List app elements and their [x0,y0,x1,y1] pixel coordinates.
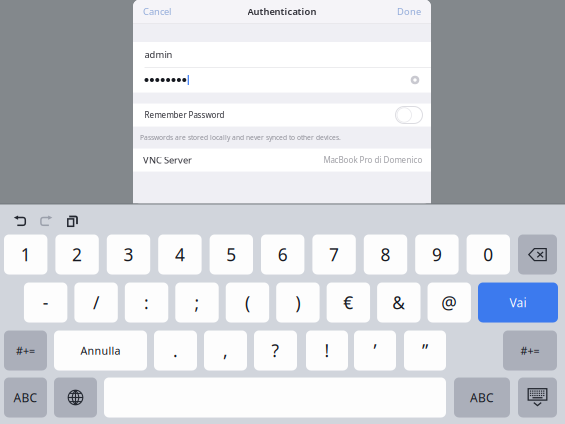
button[interactable]: ABC [4,377,47,417]
button[interactable]: 2 [55,234,99,274]
button[interactable]: Vai [478,282,558,322]
staticText: ) [295,291,300,314]
staticText: ? [271,339,279,362]
staticText: 5 [226,243,236,266]
staticText: 6 [278,243,288,266]
staticText: 0 [483,243,493,266]
staticText: @ [441,291,457,314]
button[interactable]: , [204,330,247,370]
staticText: ” [422,339,428,362]
button[interactable]: @ [428,282,471,322]
staticText: 3 [123,243,133,266]
button[interactable]: : [125,282,168,322]
button[interactable]: 9 [415,234,459,274]
button[interactable]: Delete [518,234,557,274]
button[interactable]: 0 [467,234,510,274]
staticText: ; [194,291,199,314]
staticText: & [392,291,405,314]
staticText: VNC Server [143,154,192,166]
staticText: Authentication [247,5,316,18]
button[interactable]: #+= [503,330,557,370]
button[interactable]: 1 [4,234,47,274]
staticText: 2 [72,243,82,266]
button[interactable]: ! [306,330,348,370]
button[interactable]: Next keyboard [54,377,97,417]
button[interactable]: Redo [33,208,59,234]
button[interactable]: 7 [312,234,356,274]
staticText: 7 [329,243,339,266]
staticText: , [223,339,228,362]
button[interactable]: ) [276,282,320,322]
button[interactable]: 6 [261,234,304,274]
button[interactable]: VNC Server [133,148,431,171]
staticText: € [343,291,353,314]
button[interactable]: ” [404,330,446,370]
button[interactable]: Annulla [54,330,147,370]
staticText: ABC [470,389,494,405]
staticText: Vai [509,294,526,310]
button[interactable]: 3 [107,234,150,274]
button[interactable]: - [24,282,67,322]
staticText: admin [144,48,172,61]
staticText: Passwords are stored locally and never s… [140,133,341,142]
staticText: #+= [16,343,35,358]
staticText: ( [245,291,250,314]
staticText: 8 [380,243,390,266]
staticText: MacBook Pro di Domenico [323,155,422,165]
button[interactable]: € [327,282,370,322]
button[interactable]: 4 [158,234,202,274]
button[interactable]: Remember Password [395,106,422,123]
button[interactable]: Done [387,0,431,23]
button[interactable]: #+= [4,330,47,370]
button[interactable]: 8 [364,234,407,274]
staticText: Cancel [143,5,171,18]
staticText: . [173,339,178,362]
button[interactable]: Clear text [407,72,423,88]
staticText: ’ [373,339,376,362]
button[interactable]: ? [254,330,297,370]
staticText: 1 [21,243,31,266]
button[interactable]: ’ [354,330,396,370]
button[interactable]: & [377,282,420,322]
button[interactable]: Cancel [133,0,181,23]
staticText: - [43,291,49,314]
button[interactable]: ; [175,282,219,322]
staticText: ! [324,339,329,362]
button[interactable]: Paste [59,208,85,234]
button[interactable]: 5 [210,234,253,274]
button[interactable]: ABC [454,377,510,417]
staticText: 9 [432,243,442,266]
staticText: Annulla [80,343,120,358]
button[interactable]: Undo [7,208,33,234]
staticText: Done [397,5,421,18]
button[interactable]: ( [226,282,269,322]
button[interactable]: Dismiss keyboard [518,377,557,417]
button[interactable]: Space [104,377,446,417]
staticText: Remember Password [144,110,224,120]
button[interactable]: . [154,330,197,370]
staticText: : [144,291,149,314]
staticText: 4 [175,243,185,266]
staticText: ABC [13,389,37,405]
staticText: / [93,291,99,314]
staticText: #+= [520,343,539,358]
button[interactable]: / [74,282,118,322]
